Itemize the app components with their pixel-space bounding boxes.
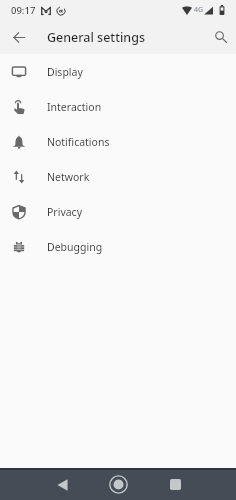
- staticText: Notifications: [47, 135, 110, 149]
- button[interactable]: Network: [0, 159, 236, 194]
- button[interactable]: Recent apps: [160, 469, 191, 500]
- button[interactable]: Home: [103, 469, 134, 500]
- button[interactable]: Notifications: [0, 124, 236, 159]
- staticText: 09:17: [11, 4, 36, 17]
- staticText: Debugging: [47, 240, 103, 254]
- button[interactable]: Navigate up: [6, 24, 32, 50]
- button[interactable]: Display: [0, 54, 236, 89]
- staticText: Privacy: [47, 205, 83, 219]
- button[interactable]: Debugging: [0, 229, 236, 264]
- staticText: Network: [47, 170, 90, 184]
- button[interactable]: Search: [209, 25, 233, 49]
- button[interactable]: Back: [47, 469, 78, 500]
- staticText: Display: [47, 65, 83, 79]
- button[interactable]: Privacy: [0, 194, 236, 229]
- staticText: General settings: [47, 29, 145, 46]
- button[interactable]: Interaction: [0, 89, 236, 124]
- staticText: Interaction: [47, 100, 102, 114]
- staticText: 4G: [194, 5, 204, 15]
